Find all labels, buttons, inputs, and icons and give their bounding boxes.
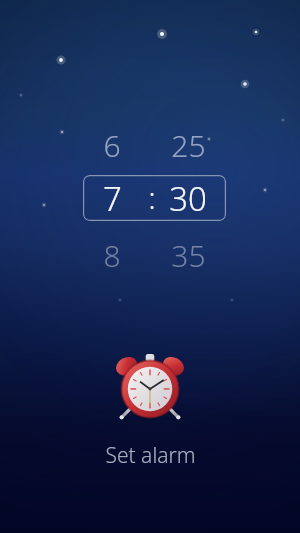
button[interactable] bbox=[83, 175, 226, 221]
button[interactable]: 6 bbox=[80, 121, 144, 169]
staticText: 6 bbox=[103, 125, 121, 166]
staticText: : bbox=[148, 178, 156, 217]
staticText: 30 bbox=[169, 176, 207, 221]
staticText: 35 bbox=[171, 235, 206, 276]
staticText: 25 bbox=[171, 125, 206, 166]
button[interactable]: : bbox=[120, 173, 184, 221]
staticText: 8 bbox=[103, 235, 121, 276]
button[interactable]: 30 bbox=[156, 174, 220, 222]
button[interactable]: Set alarm bbox=[50, 438, 250, 472]
button[interactable]: 7 bbox=[80, 174, 144, 222]
button[interactable]: 8 bbox=[80, 231, 144, 279]
button[interactable]: Alarm clock bbox=[112, 352, 188, 418]
staticText: Set alarm bbox=[105, 441, 196, 470]
button[interactable]: 25 bbox=[156, 121, 220, 169]
button[interactable]: 35 bbox=[156, 231, 220, 279]
staticText: 7 bbox=[103, 176, 122, 221]
